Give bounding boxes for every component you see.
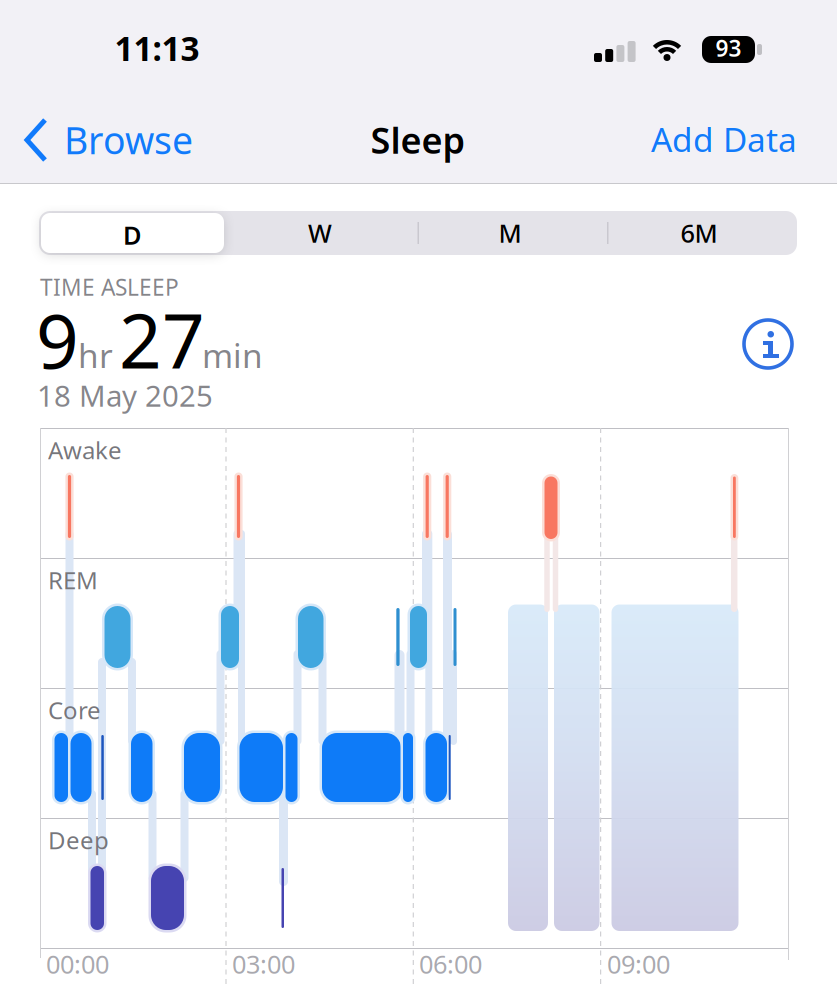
button[interactable]: W [270,213,370,253]
staticText: 00:00 [46,947,109,981]
staticText: Deep [48,824,109,856]
staticText: 09:00 [607,947,670,981]
staticText: 18 May 2025 [37,376,213,415]
button[interactable]: 6M [649,213,749,253]
staticText: REM [48,564,98,596]
staticText: Awake [48,434,122,466]
staticText: M [498,216,521,250]
staticText: TIME ASLEEP [40,272,179,302]
button[interactable]: Add Data [547,117,797,161]
staticText: 93 [715,33,741,63]
button[interactable] [39,211,797,255]
button[interactable]: M [460,213,560,253]
staticText: Sleep [370,116,465,164]
staticText: D [123,218,142,252]
staticText: 27 [119,290,205,389]
button[interactable] [744,320,792,368]
button[interactable]: Browse [26,113,186,169]
staticText: 03:00 [232,947,295,981]
staticText: Browse [64,115,193,165]
button[interactable]: D [41,213,224,253]
staticText: Add Data [651,117,797,161]
staticText: 06:00 [419,947,482,981]
staticText: 11:13 [114,26,199,70]
staticText: Core [48,694,101,726]
staticText: 9 [36,290,79,389]
staticText: W [308,216,332,250]
staticText: min [202,333,263,377]
staticText: hr [78,333,113,377]
staticText: 6M [680,216,717,250]
